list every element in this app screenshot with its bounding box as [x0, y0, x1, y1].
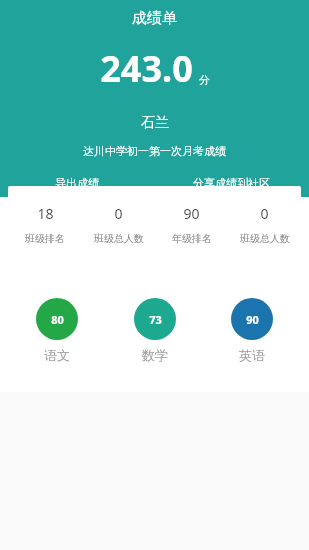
staticText: 90 [246, 312, 259, 327]
button[interactable]: 分享成绩到社区 [154, 169, 309, 197]
staticText: 0 [114, 204, 123, 223]
staticText: 数学 [142, 347, 168, 363]
button[interactable]: 73 [115, 298, 195, 363]
staticText: 分 [199, 73, 210, 87]
staticText: 班级总人数 [94, 232, 144, 245]
staticText: 90 [183, 204, 200, 223]
staticText: 243.0 [100, 44, 193, 93]
button[interactable]: 18 [8, 186, 82, 263]
staticText: 成绩单 [132, 9, 177, 28]
staticText: 语文 [44, 347, 70, 363]
staticText: 0 [260, 204, 269, 223]
staticText: 80 [51, 312, 64, 327]
button[interactable]: 90 [155, 186, 228, 263]
staticText: 达川中学初一第一次月考成绩 [83, 144, 226, 158]
staticText: 18 [37, 204, 54, 223]
button[interactable]: 导出成绩 [0, 169, 154, 197]
staticText: 英语 [239, 347, 265, 363]
button[interactable]: 90 [212, 298, 292, 363]
staticText: 班级总人数 [240, 232, 290, 245]
staticText: 班级排名 [25, 232, 65, 245]
staticText: 73 [149, 312, 162, 327]
staticText: 年级排名 [172, 232, 212, 245]
staticText: 石兰 [141, 114, 169, 132]
button[interactable]: 80 [17, 298, 97, 363]
button[interactable]: 0 [228, 186, 301, 263]
staticText: 导出成绩 [55, 176, 99, 190]
button[interactable]: 0 [82, 186, 155, 263]
staticText: 分享成绩到社区 [193, 176, 270, 190]
